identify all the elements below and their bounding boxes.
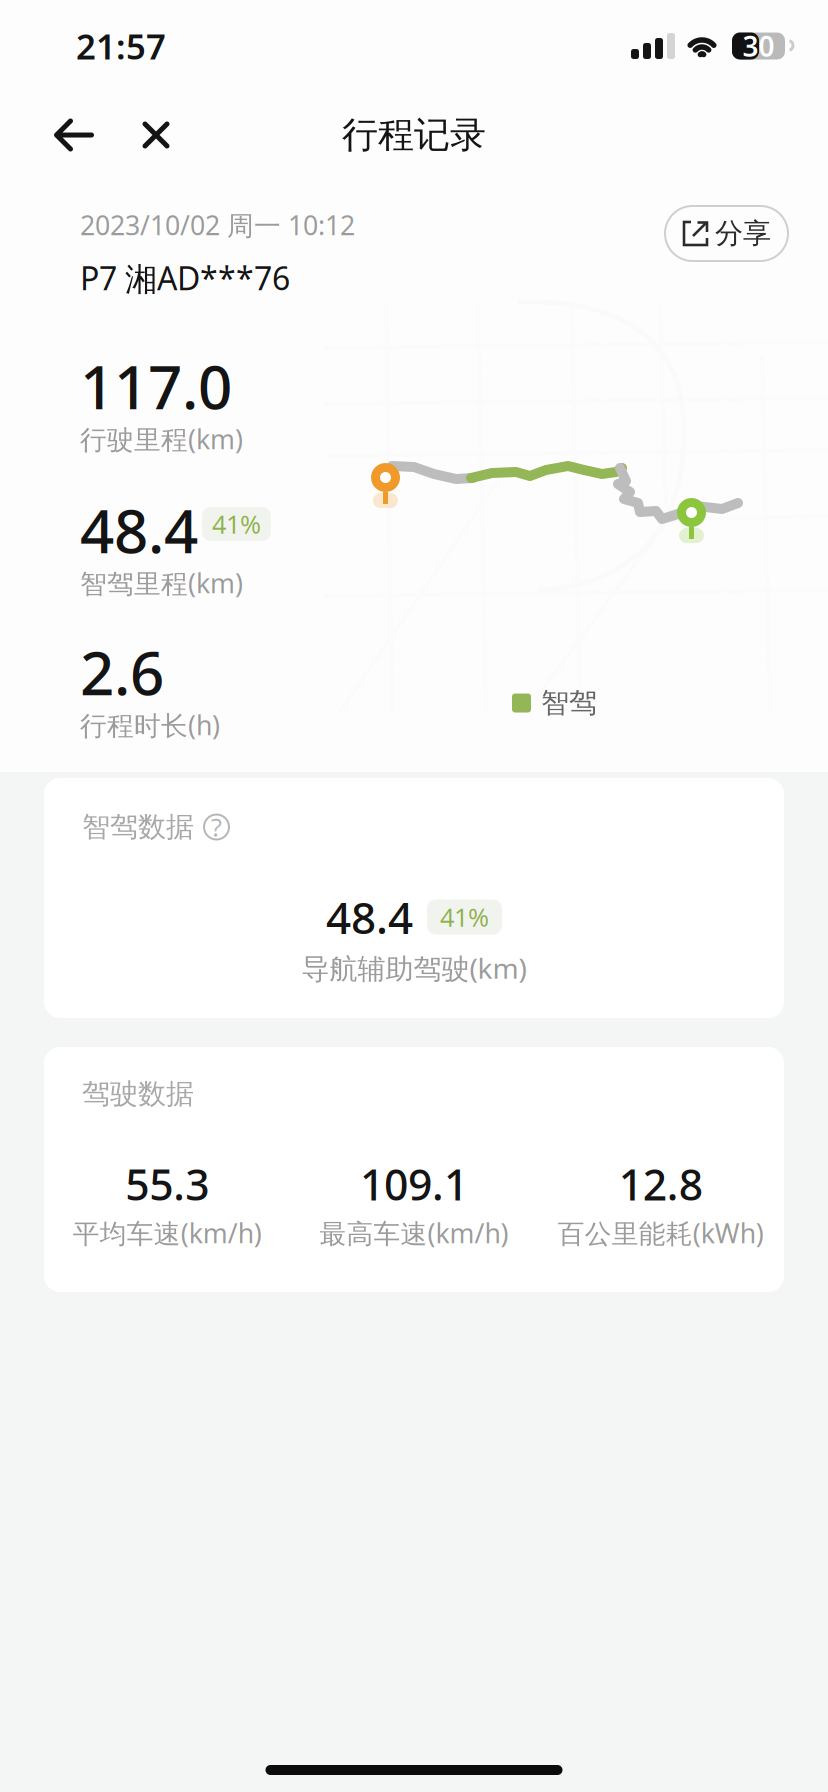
staticText: 48.4 bbox=[80, 490, 198, 570]
staticText: 12.8 bbox=[619, 1156, 703, 1212]
staticText: 智驾里程(km) bbox=[80, 565, 243, 601]
staticText: 驾驶数据 bbox=[82, 1077, 194, 1111]
button[interactable]: Close bbox=[134, 107, 178, 163]
staticText: 分享 bbox=[715, 216, 771, 251]
staticText: 2023/10/02 周一 10:12 bbox=[80, 207, 355, 243]
staticText: 48.4 bbox=[326, 888, 413, 946]
button[interactable]: 分享 bbox=[665, 206, 788, 261]
staticText: 智驾 bbox=[541, 686, 597, 720]
staticText: 行程时长(h) bbox=[80, 707, 220, 743]
staticText: 21:57 bbox=[76, 23, 166, 69]
staticText: 2.6 bbox=[80, 632, 164, 712]
staticText: 41% bbox=[212, 507, 261, 541]
staticText: 55.3 bbox=[125, 1156, 209, 1212]
staticText: 117.0 bbox=[80, 346, 232, 426]
staticText: 平均车速(km/h) bbox=[73, 1215, 262, 1251]
staticText: 百公里能耗(kWh) bbox=[558, 1215, 764, 1251]
staticText: 智驾数据 bbox=[82, 810, 194, 844]
staticText: 41% bbox=[440, 900, 489, 934]
staticText: 行驶里程(km) bbox=[80, 421, 243, 457]
staticText: 30 bbox=[742, 27, 774, 65]
staticText: 109.1 bbox=[360, 1156, 468, 1212]
button[interactable]: Back bbox=[48, 107, 100, 163]
staticText: 导航辅助驾驶(km) bbox=[301, 949, 526, 987]
staticText: 最高车速(km/h) bbox=[319, 1215, 508, 1251]
staticText: ? bbox=[211, 810, 222, 844]
staticText: 行程记录 bbox=[342, 113, 486, 157]
staticText: P7 湘AD***76 bbox=[80, 257, 290, 299]
